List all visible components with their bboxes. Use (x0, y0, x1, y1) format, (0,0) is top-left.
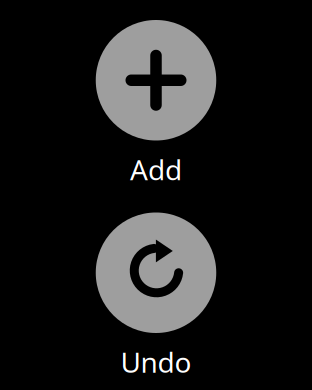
button[interactable]: Undo (96, 212, 216, 375)
staticText: Add (130, 151, 182, 188)
button[interactable]: Add (96, 20, 216, 182)
staticText: Undo (120, 343, 191, 381)
